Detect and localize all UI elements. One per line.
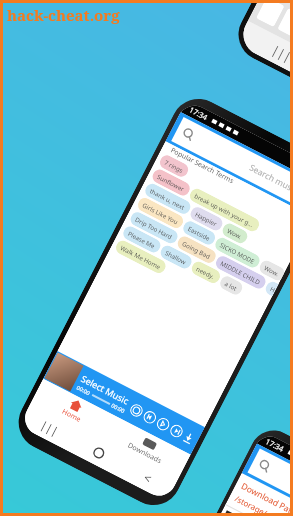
button[interactable]: Happier: [188, 205, 225, 233]
staticText: Search music...: [247, 162, 293, 200]
other: Search: [256, 457, 273, 475]
staticText: Home: [60, 407, 82, 425]
button[interactable]: Shallow: [158, 243, 194, 271]
staticText: Wow.: [226, 226, 244, 241]
staticText: Popular Search Terms: [169, 145, 236, 185]
staticText: Shallow: [164, 248, 188, 266]
button[interactable]: Sunflower: [150, 167, 192, 198]
button[interactable]: Download: [180, 429, 198, 446]
button[interactable]: break up with your g...: [187, 186, 261, 234]
staticText: |||: [38, 417, 62, 439]
button[interactable]: Girls Like You: [135, 196, 185, 230]
button[interactable]: Downloads: [105, 417, 191, 479]
button[interactable]: Search: [247, 448, 293, 516]
staticText: Happier: [194, 210, 219, 228]
button[interactable]: Play: [154, 415, 172, 433]
button[interactable]: a lot: [218, 274, 245, 297]
button[interactable]: Please Me: [121, 224, 163, 255]
button[interactable]: Home: [31, 379, 117, 441]
staticText: Walk Me Home: [119, 243, 162, 270]
button[interactable]: Search: [171, 117, 293, 212]
staticText: Wow.: [263, 263, 281, 278]
staticText: 00:00: [110, 401, 127, 414]
staticText: 7 rings: [163, 158, 185, 174]
button[interactable]: Walk Me Home: [114, 238, 168, 275]
button[interactable]: Drip Too Hard: [128, 210, 180, 246]
staticText: Select Music: [79, 372, 132, 407]
staticText: a lot: [224, 279, 239, 292]
staticText: 17:34: [264, 436, 286, 454]
button[interactable]: Home: [85, 439, 112, 466]
button[interactable]: High Hopes: [263, 279, 279, 296]
button[interactable]: Wow.: [220, 221, 250, 246]
other: Search: [180, 126, 197, 143]
staticText: <: [141, 469, 155, 486]
button[interactable]: 7 rings: [157, 153, 191, 179]
staticText: Eastside: [187, 224, 212, 242]
staticText: MIDDLE CHILD: [219, 259, 262, 286]
staticText: 17:34: [188, 104, 210, 122]
button[interactable]: MIDDLE CHILD: [213, 254, 268, 291]
staticText: Please Me: [127, 229, 157, 250]
staticText: Downloads: [126, 440, 163, 466]
button[interactable]: needy.: [189, 259, 222, 285]
staticText: thank u, next: [149, 186, 187, 211]
staticText: Girls Like You: [141, 201, 180, 226]
button[interactable]: Wow.: [257, 258, 286, 282]
button[interactable]: Eastside: [181, 219, 217, 247]
staticText: needy.: [195, 264, 217, 281]
staticText: break up with your g...: [193, 191, 256, 229]
staticText: Going Bad: [181, 239, 212, 260]
staticText: High Hopes: [269, 284, 277, 294]
staticText: 00:00: [76, 384, 92, 397]
button[interactable]: Repeat: [128, 402, 145, 419]
button[interactable]: SICKO MODE: [213, 235, 262, 270]
button[interactable]: Next: [168, 422, 185, 440]
staticText: Download Path:: [239, 480, 293, 516]
staticText: /storage/emulated/0/music: [233, 492, 293, 516]
button[interactable]: Back: [134, 464, 161, 491]
button[interactable]: Previous: [141, 408, 158, 426]
staticText: SICKO MODE: [219, 240, 256, 265]
button[interactable]: Recents: [36, 414, 63, 440]
button[interactable]: thank u, next: [143, 181, 193, 216]
staticText: Sunflower: [156, 172, 186, 193]
staticText: |||: [269, 41, 293, 64]
staticText: hack-cheat.org: [7, 5, 120, 25]
button[interactable]: Going Bad: [175, 234, 218, 265]
staticText: Drip Too Hard: [134, 215, 174, 241]
